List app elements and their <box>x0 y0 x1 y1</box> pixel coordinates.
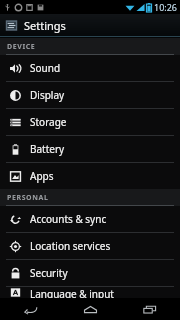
staticText: 10:26 <box>154 1 178 13</box>
staticText: Language & input <box>30 287 114 298</box>
staticText: Battery <box>30 142 65 156</box>
staticText: Storage <box>30 115 67 129</box>
staticText: Display <box>30 88 65 102</box>
staticText: Security <box>30 266 68 280</box>
other: Settings app icon <box>5 19 18 32</box>
staticText: Accounts & sync <box>30 212 107 226</box>
button[interactable]: Language & input <box>0 287 180 298</box>
button[interactable]: Security <box>0 260 180 286</box>
staticText: PERSONAL <box>7 193 49 203</box>
staticText: Location services <box>30 239 111 253</box>
staticText: DEVICE <box>7 42 36 52</box>
button[interactable]: Location services <box>0 233 180 259</box>
staticText: Settings <box>24 18 66 33</box>
button[interactable]: Home <box>60 298 120 320</box>
staticText: Sound <box>30 61 61 75</box>
button[interactable]: Display <box>0 82 180 108</box>
button[interactable]: Accounts & sync <box>0 206 180 232</box>
button[interactable]: Settings app icon <box>0 14 180 36</box>
button[interactable]: Apps <box>0 163 180 189</box>
button[interactable]: Storage <box>0 109 180 135</box>
button[interactable]: Recent apps <box>120 298 180 320</box>
button[interactable]: Sound <box>0 55 180 81</box>
button[interactable]: Battery <box>0 136 180 162</box>
button[interactable]: Back <box>0 298 60 320</box>
staticText: Apps <box>30 169 54 183</box>
